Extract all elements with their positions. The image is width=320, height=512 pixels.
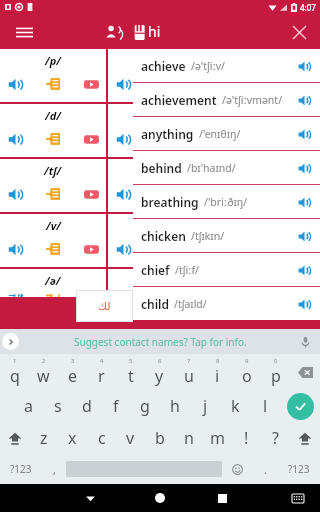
button[interactable]: Examples bbox=[43, 294, 63, 297]
button[interactable]: breathing bbox=[133, 185, 320, 218]
button[interactable]: chicken bbox=[133, 219, 320, 252]
button[interactable]: Video bbox=[188, 74, 208, 94]
button[interactable]: behind bbox=[133, 151, 320, 184]
button[interactable]: chief bbox=[133, 253, 320, 286]
button[interactable]: Video bbox=[188, 184, 208, 204]
button[interactable]: Video bbox=[81, 239, 101, 259]
button[interactable]: /d/ bbox=[108, 104, 213, 157]
button[interactable]: Examples bbox=[258, 184, 278, 204]
button[interactable]: ! bbox=[232, 422, 261, 454]
button[interactable]: 8 bbox=[203, 354, 232, 390]
button[interactable]: Examples bbox=[151, 129, 171, 149]
button[interactable]: d bbox=[72, 390, 101, 422]
button[interactable]: Video bbox=[81, 184, 101, 204]
button[interactable]: Video bbox=[81, 129, 101, 149]
button[interactable]: Play sound bbox=[5, 294, 25, 297]
button[interactable]: f bbox=[101, 390, 130, 422]
button[interactable]: /d/ bbox=[215, 104, 320, 157]
button[interactable]: l bbox=[250, 390, 280, 422]
button[interactable]: Play breathing bbox=[295, 193, 313, 211]
button[interactable]: Play chicken bbox=[295, 227, 313, 245]
button[interactable]: Play sound bbox=[113, 184, 133, 204]
button[interactable]: Examples bbox=[43, 239, 63, 259]
button[interactable]: x bbox=[58, 422, 87, 454]
button[interactable]: Play behind bbox=[295, 159, 313, 177]
button[interactable]: Video bbox=[81, 74, 101, 94]
button[interactable]: Play anything bbox=[295, 125, 313, 143]
button[interactable]: Play sound bbox=[5, 129, 25, 149]
button[interactable]: Play sound bbox=[220, 184, 240, 204]
button[interactable]: Suggest contact names? Tap for info. bbox=[74, 335, 247, 349]
button[interactable]: b bbox=[145, 422, 174, 454]
button[interactable]: h bbox=[160, 390, 190, 422]
button[interactable]: Play sound bbox=[5, 74, 25, 94]
button[interactable]: /p/ bbox=[215, 49, 320, 102]
button[interactable]: Video bbox=[295, 74, 315, 94]
button[interactable]: child bbox=[133, 287, 320, 320]
button[interactable]: Examples bbox=[151, 74, 171, 94]
button[interactable]: Dictionary bbox=[124, 17, 154, 47]
button[interactable]: 2 bbox=[29, 354, 58, 390]
button[interactable]: Play sound bbox=[220, 129, 240, 149]
button[interactable]: Play child bbox=[295, 295, 313, 313]
button[interactable]: /v/ bbox=[0, 214, 106, 267]
button[interactable]: Video bbox=[295, 184, 315, 204]
button[interactable]: Voice input bbox=[296, 333, 314, 351]
button[interactable]: 7 bbox=[174, 354, 203, 390]
button[interactable]: لك bbox=[76, 290, 133, 322]
button[interactable]: 5 bbox=[116, 354, 145, 390]
button[interactable]: ?123 bbox=[278, 454, 320, 484]
button[interactable]: Play sound bbox=[5, 184, 25, 204]
button[interactable]: Play sound bbox=[220, 239, 240, 259]
button[interactable]: Play chief bbox=[295, 261, 313, 279]
button[interactable]: s bbox=[43, 390, 72, 422]
button[interactable]: Video bbox=[295, 129, 315, 149]
button[interactable]: achievement bbox=[133, 83, 320, 116]
button[interactable]: . bbox=[252, 454, 278, 484]
button[interactable]: Play sound bbox=[220, 74, 240, 94]
button[interactable]: n bbox=[174, 422, 203, 454]
button[interactable]: , bbox=[42, 454, 66, 484]
button[interactable]: /ə/ bbox=[108, 269, 213, 297]
button[interactable]: Emoji bbox=[222, 454, 252, 484]
button[interactable]: Video bbox=[188, 239, 208, 259]
button[interactable]: g bbox=[130, 390, 160, 422]
button[interactable]: Clear bbox=[284, 17, 314, 47]
button[interactable]: Play sound bbox=[113, 74, 133, 94]
button[interactable]: Menu bbox=[8, 16, 40, 48]
button[interactable]: Recents bbox=[210, 486, 234, 510]
button[interactable]: /p/ bbox=[0, 49, 106, 102]
button[interactable]: /tʃ/ bbox=[0, 159, 106, 212]
button[interactable]: j bbox=[190, 390, 220, 422]
button[interactable]: /v/ bbox=[108, 214, 213, 267]
button[interactable]: z bbox=[30, 422, 58, 454]
button[interactable]: Play sound bbox=[5, 239, 25, 259]
button[interactable]: Play achieve bbox=[295, 57, 313, 75]
button[interactable]: a bbox=[14, 390, 43, 422]
button[interactable]: Switch keyboard bbox=[286, 486, 310, 510]
button[interactable]: Backspace bbox=[290, 354, 320, 390]
button[interactable]: Enter bbox=[280, 390, 320, 422]
button[interactable]: 0 bbox=[261, 354, 290, 390]
button[interactable]: Shift bbox=[290, 422, 320, 454]
button[interactable]: /ə/ bbox=[215, 269, 320, 297]
button[interactable]: Examples bbox=[151, 184, 171, 204]
button[interactable]: Examples bbox=[43, 129, 63, 149]
button[interactable]: 4 bbox=[87, 354, 116, 390]
button[interactable]: Expand suggestions bbox=[2, 333, 19, 350]
button[interactable]: /v/ bbox=[215, 214, 320, 267]
button[interactable]: Play sound bbox=[113, 239, 133, 259]
button[interactable]: Video bbox=[295, 239, 315, 259]
button[interactable]: Examples bbox=[151, 239, 171, 259]
button[interactable]: Shift bbox=[0, 422, 30, 454]
button[interactable]: /ə/ bbox=[0, 269, 106, 297]
button[interactable]: Examples bbox=[43, 184, 63, 204]
button[interactable]: c bbox=[87, 422, 116, 454]
